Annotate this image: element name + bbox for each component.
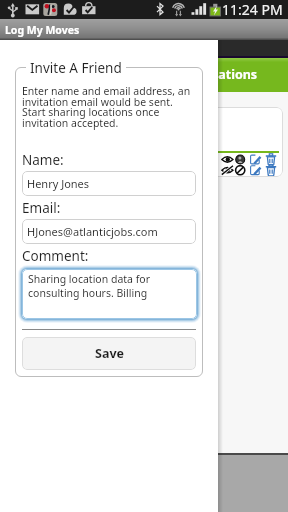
staticText: HJones@atlanticjobs.com [27, 224, 158, 239]
button[interactable]: HJones@atlanticjobs.com [22, 219, 196, 244]
staticText: Name: [22, 151, 64, 169]
staticText: 11:24 PM [222, 0, 283, 19]
staticText: invitation accepted. [22, 116, 119, 130]
staticText: Henry Jones [27, 176, 90, 191]
staticText: Invite A Friend [30, 59, 122, 77]
staticText: Comment: [22, 247, 89, 265]
staticText: Enter name and email address, an [22, 84, 191, 98]
staticText: Log My Moves [5, 23, 80, 37]
staticText: Email: [22, 199, 61, 217]
button[interactable]: Save [22, 337, 196, 370]
staticText: invitation email would be sent. [22, 95, 173, 109]
button[interactable]: Henry Jones [22, 171, 196, 196]
staticText: Start sharing locations once [22, 105, 160, 119]
staticText: Locations [197, 66, 258, 83]
staticText: Sharing location data for consulting hou… [28, 272, 150, 300]
button[interactable]: Sharing location data for consulting hou… [22, 269, 197, 319]
staticText: Save [95, 345, 124, 362]
